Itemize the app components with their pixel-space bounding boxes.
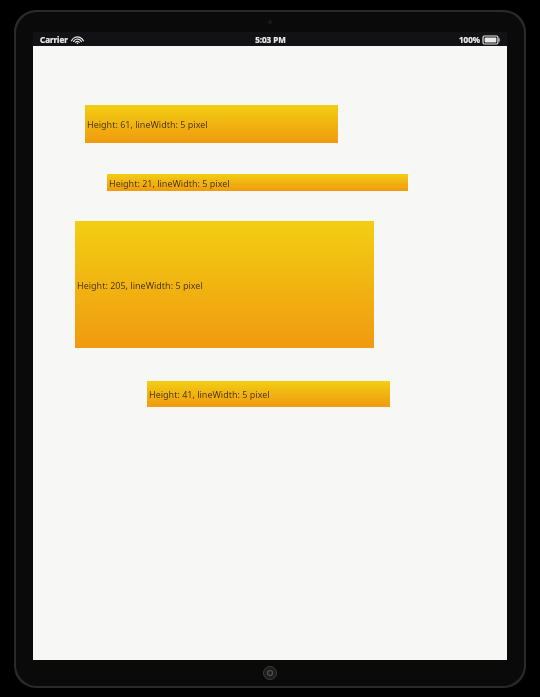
staticText: 5:03 PM bbox=[255, 34, 286, 45]
staticText: Height: 41, lineWidth: 5 pixel bbox=[149, 388, 270, 400]
staticText: Height: 205, lineWidth: 5 pixel bbox=[77, 279, 203, 291]
button[interactable]: Height: 61, lineWidth: 5 pixel bbox=[85, 105, 338, 143]
button[interactable]: Height: 205, lineWidth: 5 pixel bbox=[75, 221, 374, 348]
button[interactable]: Height: 21, lineWidth: 5 pixel bbox=[107, 174, 408, 191]
staticText: Carrier bbox=[40, 34, 68, 45]
staticText: 100% bbox=[459, 34, 480, 45]
button[interactable]: Height: 41, lineWidth: 5 pixel bbox=[147, 381, 390, 407]
staticText: Height: 61, lineWidth: 5 pixel bbox=[87, 118, 208, 130]
button[interactable]: Home bbox=[262, 665, 278, 681]
staticText: Height: 21, lineWidth: 5 pixel bbox=[109, 177, 230, 189]
